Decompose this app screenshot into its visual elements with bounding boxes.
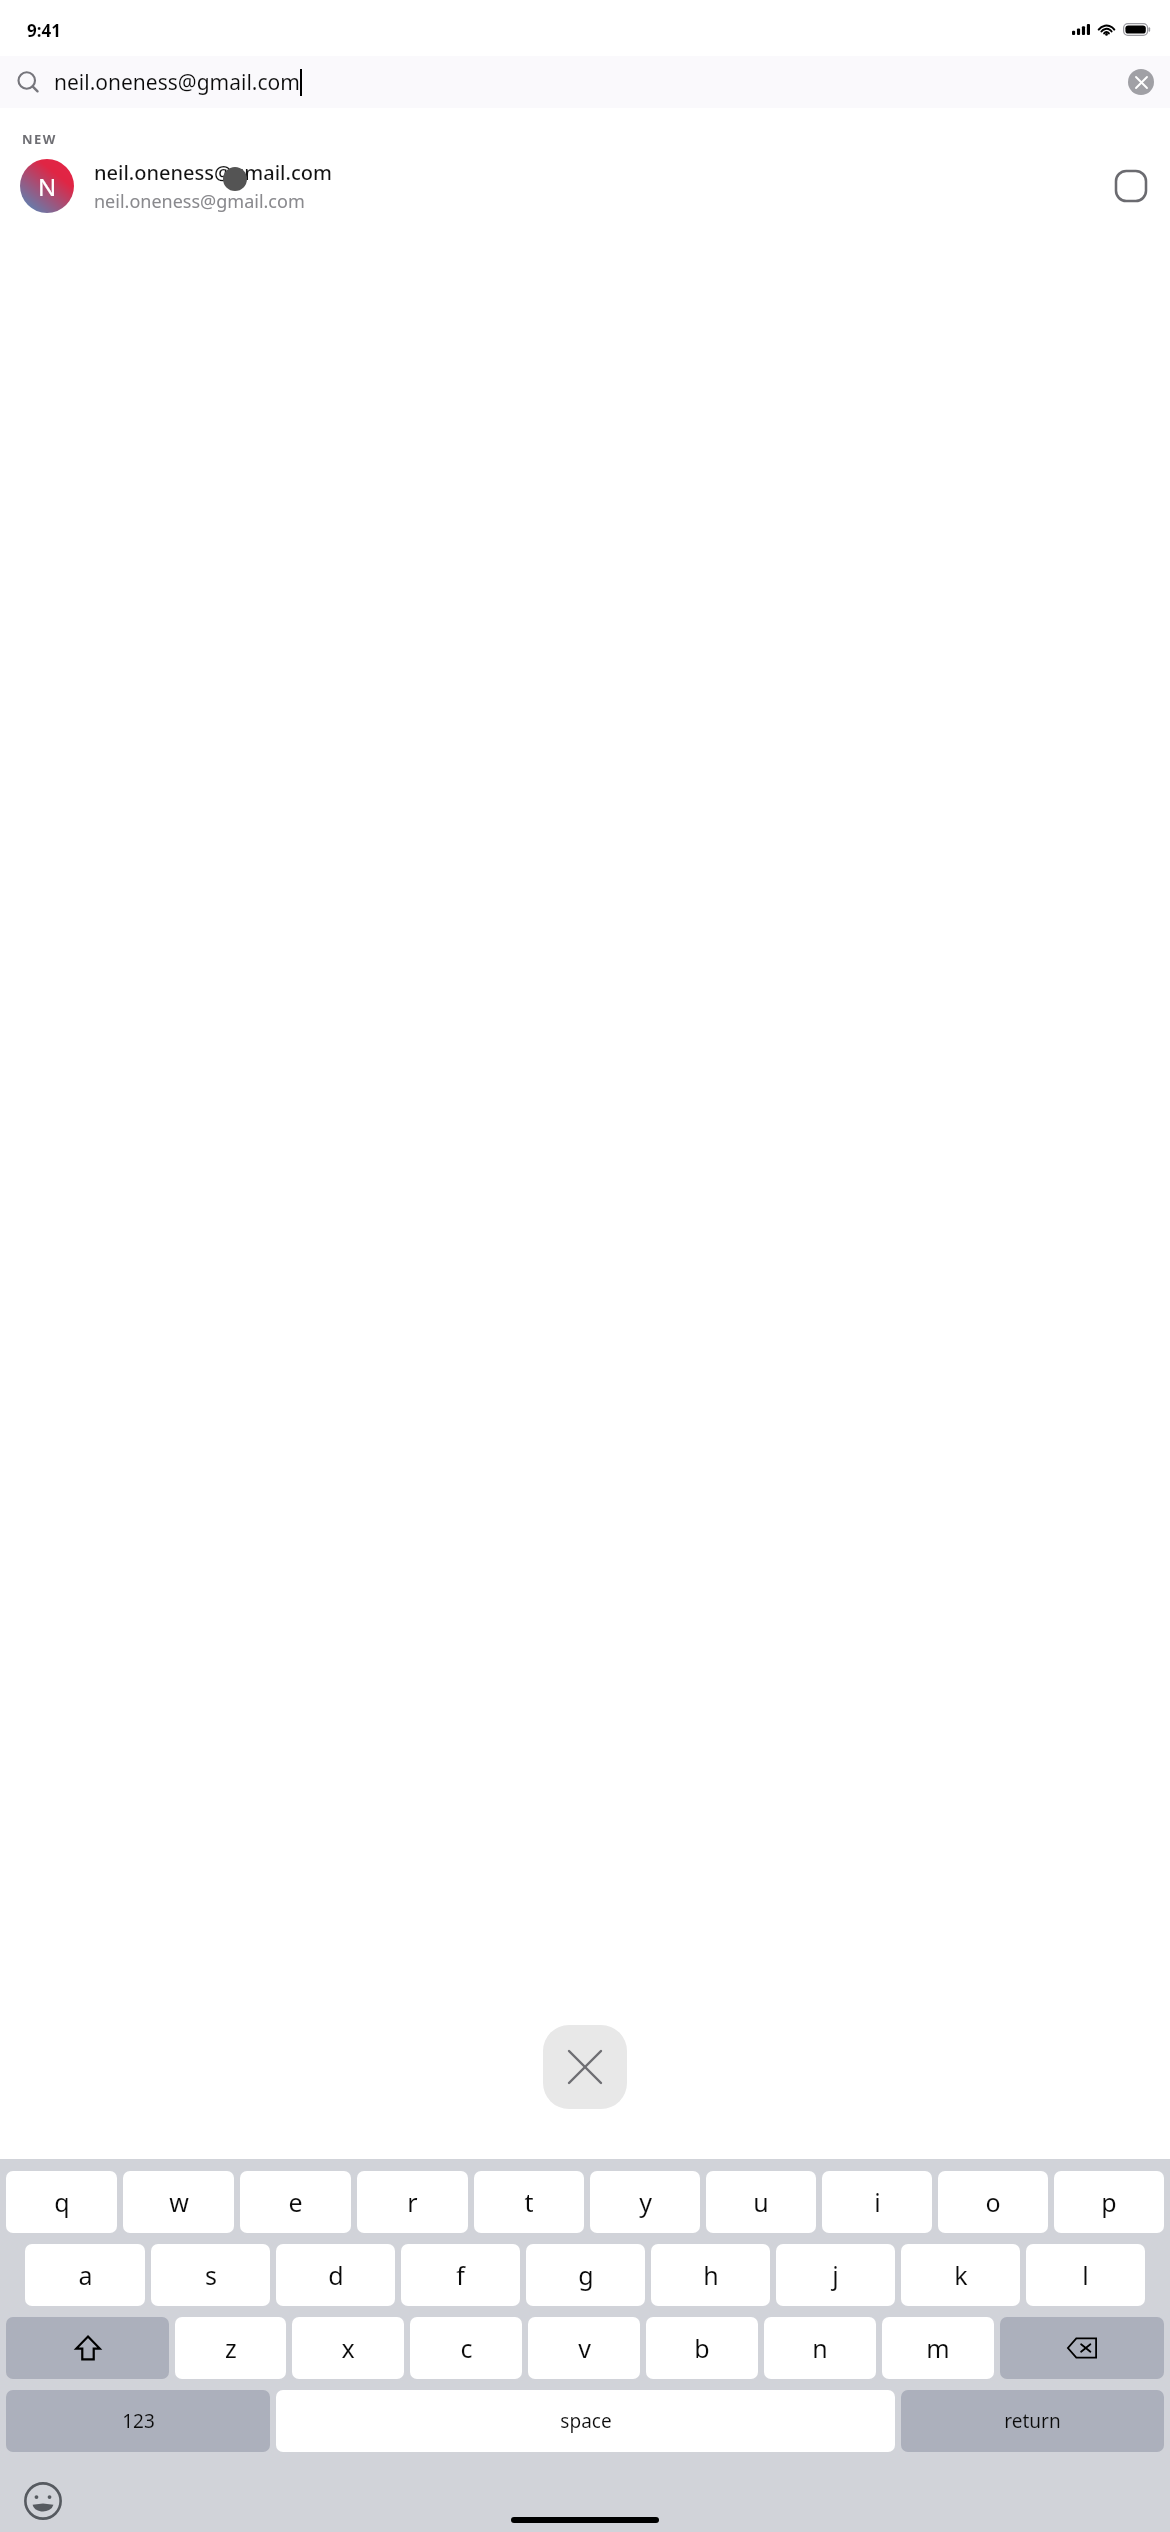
button[interactable]: k [901,2244,1020,2306]
button[interactable]: a [25,2244,145,2306]
staticText: NEW [22,130,57,148]
button[interactable]: y [590,2171,700,2233]
button[interactable]: p [1054,2171,1164,2233]
staticText: t [524,2185,534,2219]
staticText: a [78,2258,93,2292]
button[interactable]: space [276,2390,895,2452]
staticText: s [205,2258,217,2292]
button[interactable]: e [240,2171,351,2233]
button[interactable]: return [901,2390,1164,2452]
staticText: m [926,2331,950,2365]
button[interactable]: N [0,148,1170,224]
button[interactable]: c [410,2317,522,2379]
staticText: w [169,2185,189,2219]
button[interactable]: j [776,2244,895,2306]
button[interactable]: z [175,2317,286,2379]
staticText: N [38,170,57,203]
staticText: z [225,2331,237,2365]
staticText: l [1082,2258,1089,2292]
button[interactable]: h [651,2244,770,2306]
button[interactable]: 123 [6,2390,270,2452]
button[interactable]: Emoji [18,2476,68,2526]
button[interactable]: q [6,2171,117,2233]
button[interactable]: x [292,2317,404,2379]
button[interactable]: m [882,2317,994,2379]
staticText: j [832,2258,839,2292]
button[interactable]: l [1026,2244,1145,2306]
button[interactable] [6,2317,169,2379]
button[interactable]: neil.oneness@gmail.com [0,56,1170,108]
staticText: space [560,2408,612,2434]
staticText: y [639,2185,652,2219]
button[interactable]: v [528,2317,640,2379]
staticText: n [812,2331,828,2365]
staticText: k [954,2258,968,2292]
staticText: neil.oneness@gmail.com [54,68,300,97]
staticText: o [985,2185,1001,2219]
button[interactable]: g [526,2244,645,2306]
button[interactable]: r [357,2171,468,2233]
button[interactable]: n [764,2317,876,2379]
staticText: 9:41 [27,19,61,42]
button[interactable]: o [938,2171,1048,2233]
staticText: h [703,2258,719,2292]
button[interactable] [1000,2317,1164,2379]
staticText: c [460,2331,473,2365]
staticText: neil.oneness@gmail.com [94,189,305,214]
button[interactable]: t [474,2171,584,2233]
button[interactable]: f [401,2244,520,2306]
staticText: p [1101,2185,1117,2219]
button[interactable]: Close [543,2025,627,2109]
button[interactable]: b [646,2317,758,2379]
button[interactable]: i [822,2171,932,2233]
button[interactable]: u [706,2171,816,2233]
staticText: q [54,2185,70,2219]
button[interactable]: w [123,2171,234,2233]
staticText: return [1004,2408,1061,2434]
staticText: 123 [122,2408,155,2434]
staticText: b [694,2331,710,2365]
staticText: u [753,2185,769,2219]
button[interactable]: d [276,2244,395,2306]
staticText: i [874,2185,881,2219]
button[interactable]: s [151,2244,270,2306]
button[interactable]: Select contact [1112,167,1150,205]
staticText: g [578,2258,594,2292]
staticText: neil.oneness@gmail.com [94,159,332,186]
staticText: x [341,2331,355,2365]
button[interactable]: Clear search [1128,69,1154,95]
staticText: r [407,2185,418,2219]
staticText: v [578,2331,591,2365]
staticText: f [456,2258,465,2292]
staticText: d [328,2258,344,2292]
staticText: e [288,2185,303,2219]
